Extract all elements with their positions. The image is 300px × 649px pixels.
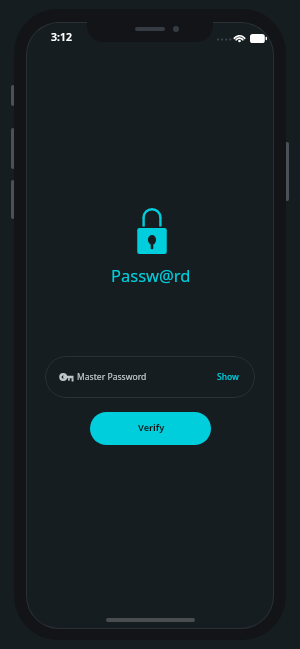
staticText: 3:12 (51, 30, 72, 44)
staticText: Show (217, 371, 239, 383)
button[interactable]: Show (217, 371, 239, 383)
button[interactable]: Master Password (45, 356, 255, 398)
staticText: Master Password (77, 371, 147, 383)
staticText: Passw@rd (111, 264, 191, 286)
staticText: Verify (138, 421, 165, 433)
button[interactable]: Verify (90, 412, 211, 445)
